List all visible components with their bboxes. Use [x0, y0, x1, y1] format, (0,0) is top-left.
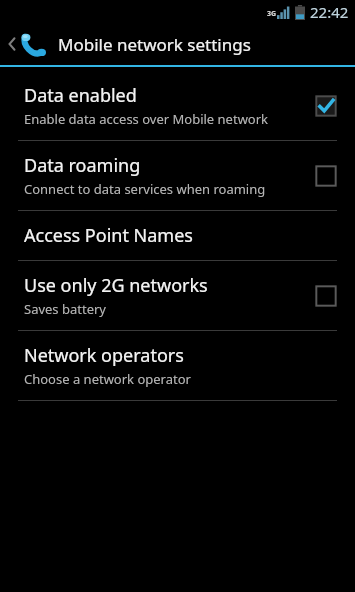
staticText: Data roaming: [24, 153, 141, 178]
button[interactable]: Use only 2G networks: [0, 261, 355, 330]
staticText: 3G: [267, 9, 277, 19]
button[interactable]: Unchecked: [315, 165, 337, 187]
staticText: Choose a network operator: [24, 370, 191, 388]
button[interactable]: Network operators: [0, 331, 355, 400]
staticText: Access Point Names: [24, 223, 193, 248]
button[interactable]: Data roaming: [0, 141, 355, 210]
button[interactable]: Checked: [315, 95, 337, 117]
staticText: Use only 2G networks: [24, 273, 208, 298]
staticText: Data enabled: [24, 83, 137, 108]
button[interactable]: Navigate up: [0, 23, 355, 65]
button[interactable]: Data enabled: [0, 71, 355, 140]
staticText: 22:42: [310, 2, 349, 22]
staticText: Saves battery: [24, 300, 106, 318]
button[interactable]: Unchecked: [315, 285, 337, 307]
staticText: Network operators: [24, 343, 184, 368]
staticText: Mobile network settings: [58, 33, 251, 56]
button[interactable]: Access Point Names: [0, 211, 355, 260]
staticText: Enable data access over Mobile network: [24, 110, 269, 128]
staticText: Connect to data services when roaming: [24, 180, 266, 198]
